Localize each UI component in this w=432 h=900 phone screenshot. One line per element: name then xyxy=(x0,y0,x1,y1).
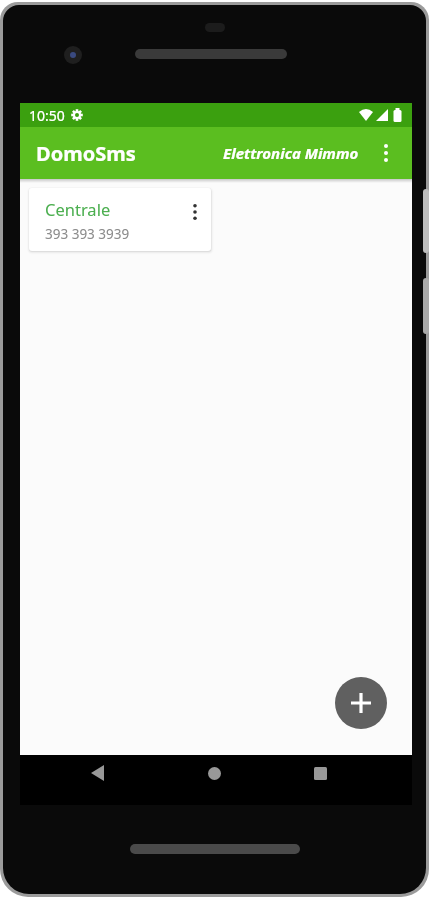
staticText: 393 393 3939 xyxy=(45,225,130,243)
staticText: Centrale xyxy=(45,198,111,220)
staticText: DomoSms xyxy=(36,140,136,167)
button[interactable] xyxy=(77,755,117,791)
button[interactable] xyxy=(194,755,234,791)
staticText: Elettronica Mimmo xyxy=(223,143,359,163)
button[interactable] xyxy=(335,677,387,729)
button[interactable] xyxy=(179,188,211,236)
button[interactable] xyxy=(359,127,412,179)
staticText: 10:50 xyxy=(29,106,65,125)
button[interactable] xyxy=(300,755,340,791)
button[interactable]: Centrale xyxy=(29,188,211,251)
